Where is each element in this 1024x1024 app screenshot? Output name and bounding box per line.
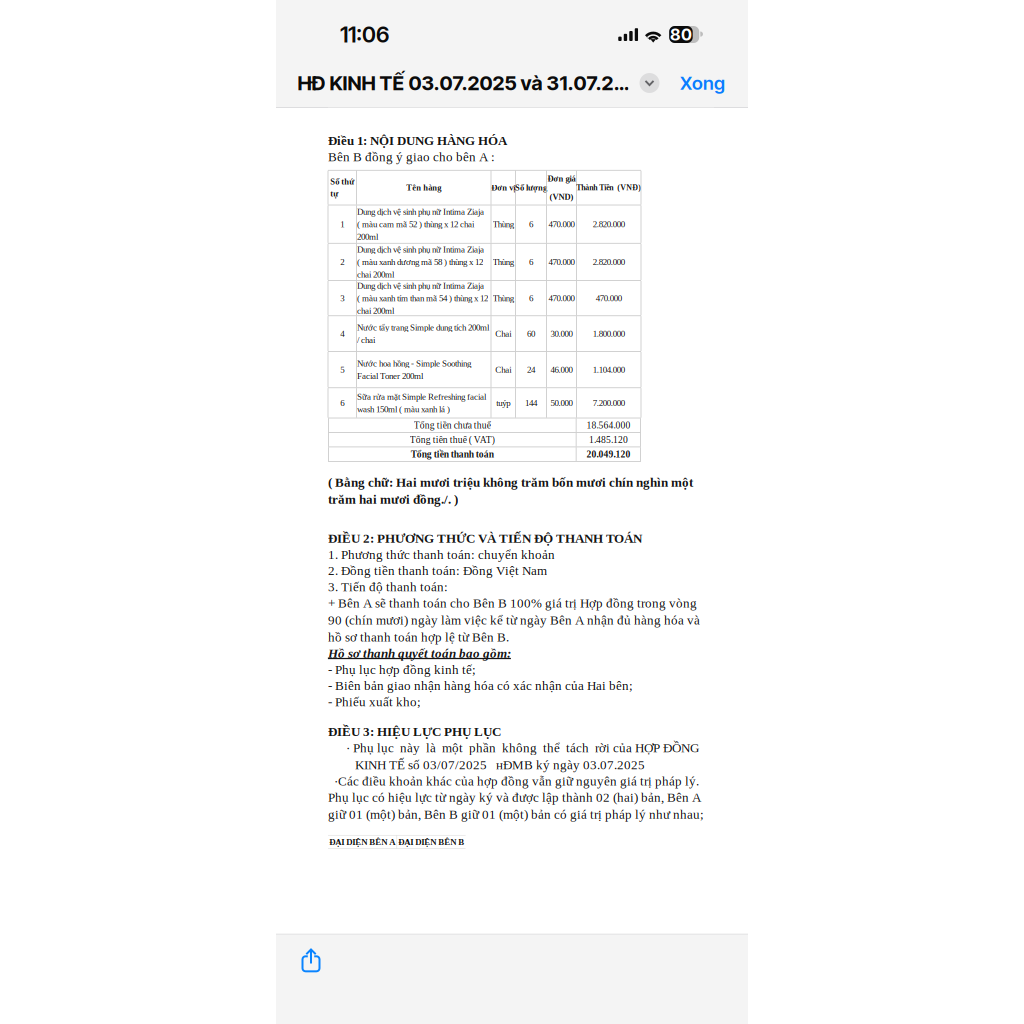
staticText: Thùng [493, 219, 514, 229]
button[interactable]: Xong [680, 66, 725, 100]
staticText: Đơn vị [491, 183, 515, 192]
staticText: tuýp [496, 398, 510, 408]
staticText: Phụ lục có hiệu lực từ ngày ký và được l… [328, 790, 704, 821]
staticText: Hồ sơ thanh quyết toán bao gồm: [328, 646, 511, 661]
staticText: ĐIỀU 3: HIỆU LỰC PHỤ LỤC [328, 724, 501, 739]
staticText: Tên hàng [406, 183, 441, 192]
staticText: 470.000 [548, 293, 574, 303]
staticText: Chai [495, 365, 511, 375]
staticText: 6 [340, 398, 344, 408]
staticText: 80 [670, 24, 692, 45]
staticText: Dung dịch vệ sinh phụ nữ Intima Ziaja ( … [357, 281, 488, 316]
button[interactable]: Share [289, 939, 333, 983]
staticText: 18.564.000 [586, 420, 630, 430]
staticText: Dung dịch vệ sinh phụ nữ Intima Ziaja ( … [357, 244, 484, 279]
staticText: - Biên bản giao nhận hàng hóa có xác nhậ… [328, 678, 633, 693]
staticText: 5 [340, 365, 344, 375]
staticText: Số thứ tự [330, 177, 354, 198]
staticText: 11:06 [340, 21, 389, 48]
staticText: 6 [529, 257, 533, 267]
staticText: 2.820.000 [593, 219, 625, 229]
staticText: Sữa rửa mặt Simple Refreshing facial was… [357, 392, 486, 414]
staticText: 3 [340, 293, 344, 303]
staticText: 2. Đồng tiền thanh toán: Đồng Việt Nam [328, 563, 547, 578]
staticText: + Bên A sẽ thanh toán cho Bên B 100% giá… [328, 596, 700, 644]
staticText: 6 [529, 219, 533, 229]
staticText: HĐ KINH TẾ 03.07.2025 và 31.07.2… [297, 71, 628, 95]
staticText: 50.000 [550, 398, 572, 408]
staticText: 30.000 [550, 329, 572, 339]
staticText: (VND) [549, 192, 573, 202]
staticText: 24 [527, 365, 535, 375]
staticText: 470.000 [548, 219, 574, 229]
staticText: 60 [527, 329, 535, 339]
staticText: Tổng tiền chưa thuế [414, 420, 491, 430]
staticText: Dung dịch vệ sinh phụ nữ Intima Ziaja ( … [357, 207, 484, 242]
staticText: Tổng tiền thuế ( VAT) [410, 434, 495, 445]
staticText: 1.800.000 [593, 329, 625, 339]
staticText: 470.000 [548, 257, 574, 267]
staticText: ĐIỀU 2: PHƯƠNG THỨC VÀ TIẾN ĐỘ THANH TOÁ… [328, 531, 642, 546]
staticText: 1.485.120 [589, 434, 628, 445]
staticText: 2.820.000 [593, 257, 625, 267]
staticText: Thùng [493, 293, 514, 303]
staticText: 3. Tiến độ thanh toán: [328, 580, 448, 594]
staticText: 6 [529, 293, 533, 303]
staticText: Thùng [493, 257, 514, 267]
staticText: - Phiếu xuất kho; [328, 695, 421, 709]
staticText: 7.200.000 [593, 398, 625, 408]
staticText: Nước hoa hồng - Simple Soothing Facial T… [357, 358, 471, 381]
staticText: 20.049.120 [586, 449, 630, 459]
staticText: 1. Phương thức thanh toán: chuyển khoản [328, 547, 555, 562]
staticText: Điều 1: NỘI DUNG HÀNG HÓA [328, 133, 507, 148]
staticText: Xong [680, 72, 725, 94]
staticText: · Phụ lục này là một phần không thể tách… [328, 741, 699, 772]
staticText: ĐẠI DIỆN BÊN A [329, 837, 395, 847]
staticText: ·Các điều khoản khác của hợp đồng vẫn gi… [328, 774, 699, 788]
staticText: ĐẠI DIỆN BÊN B [398, 837, 464, 847]
staticText: Chai [495, 329, 511, 339]
staticText: Đơn giá [547, 174, 575, 183]
staticText: 46.000 [550, 365, 572, 375]
staticText: 1.104.000 [593, 365, 625, 375]
staticText: Thành Tiền (VNĐ) [576, 183, 641, 192]
staticText: Tổng tiền thanh toán [411, 449, 494, 459]
staticText: Nước tẩy trang Simple dung tích 200ml / … [357, 322, 489, 345]
staticText: 2 [340, 257, 344, 267]
staticText: ( Bằng chữ: Hai mươi triệu không trăm bố… [328, 475, 693, 507]
staticText: Bên B đồng ý giao cho bên A : [328, 149, 495, 164]
button[interactable]: Document actions [636, 70, 662, 96]
staticText: 470.000 [596, 293, 622, 303]
staticText: 4 [340, 329, 344, 339]
staticText: 1 [340, 219, 344, 229]
staticText: Số lượng [515, 183, 547, 192]
staticText: - Phụ lục hợp đồng kinh tế; [328, 662, 476, 677]
staticText: 144 [525, 398, 537, 408]
